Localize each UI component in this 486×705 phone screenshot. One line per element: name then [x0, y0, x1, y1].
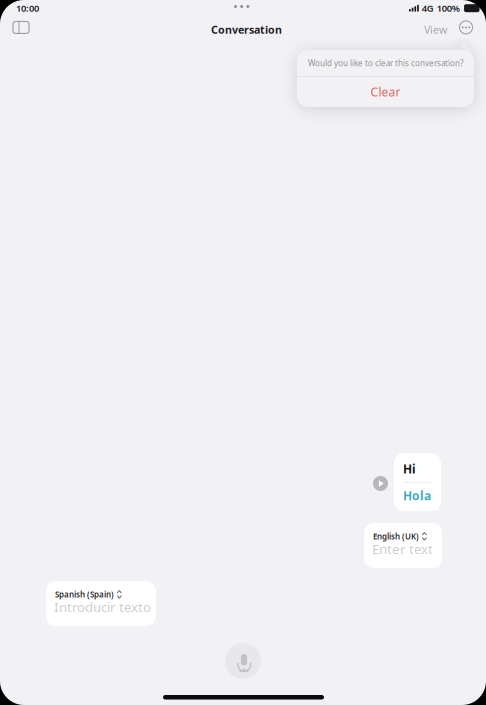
button[interactable]: More options [455, 16, 477, 38]
staticText: Introducir texto [54, 598, 151, 616]
staticText: View [424, 22, 447, 37]
button[interactable]: Clear [297, 77, 474, 107]
staticText: 100% [437, 2, 460, 14]
button[interactable]: Show Sidebar [8, 16, 34, 38]
button[interactable]: Play translation [373, 476, 388, 491]
staticText: Hola [403, 488, 431, 504]
staticText: Conversation [211, 22, 282, 37]
staticText: English (UK) [373, 531, 419, 542]
staticText: Enter text [372, 540, 433, 558]
button[interactable]: Start listening [225, 643, 261, 679]
staticText: Would you like to clear this conversatio… [308, 58, 463, 68]
staticText: Hi [403, 461, 416, 477]
staticText: 10:00 [16, 2, 39, 14]
staticText: 4G [422, 2, 434, 14]
staticText: Clear [370, 84, 400, 100]
button[interactable]: View [419, 17, 452, 42]
staticText: Spanish (Spain) [55, 589, 114, 600]
